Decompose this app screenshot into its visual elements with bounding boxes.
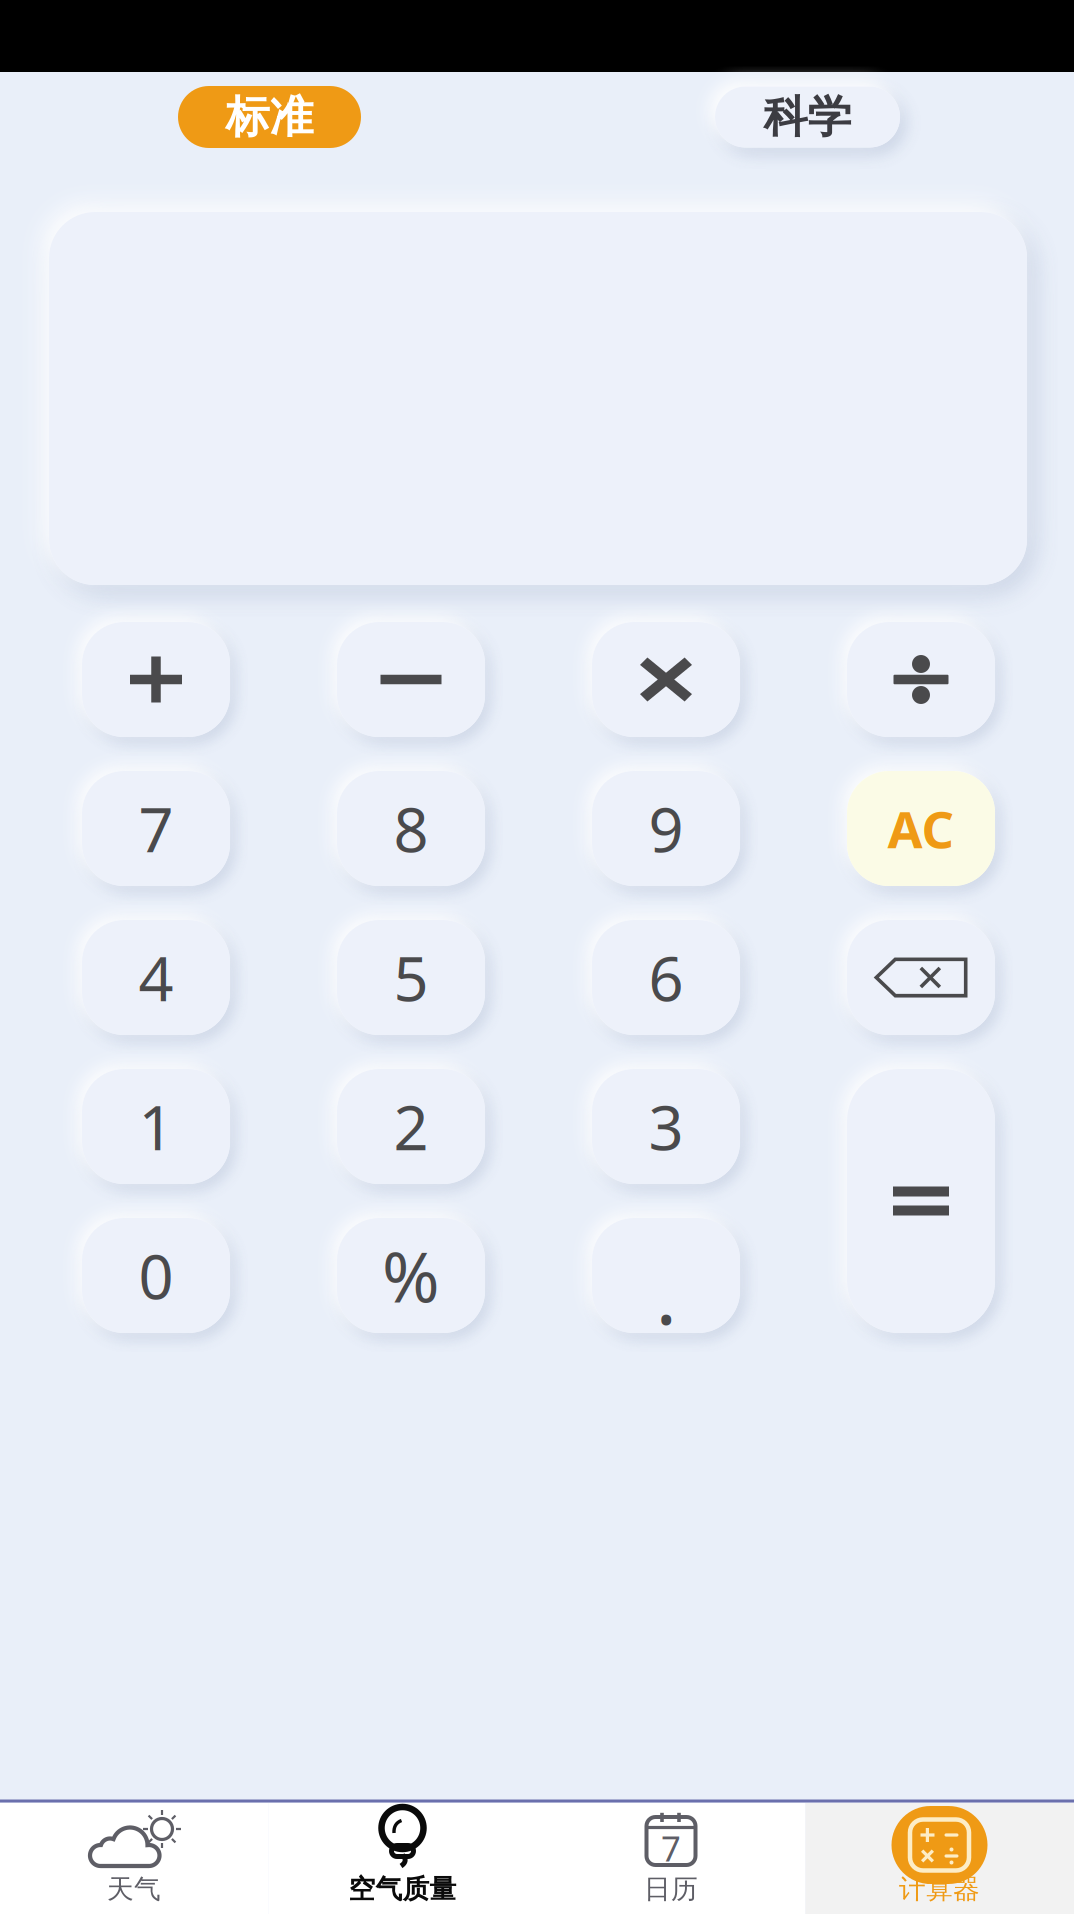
staticText: 5 [393,937,428,1018]
staticText: 6 [648,937,683,1018]
button[interactable]: 计算器 [805,1803,1074,1914]
button[interactable]: % [337,1218,485,1333]
button[interactable]: 1 [82,1069,230,1184]
button[interactable]: 9 [592,771,740,886]
button[interactable]: 4 [82,920,230,1035]
staticText: 标准 [225,90,313,144]
button[interactable]: 空气质量 [268,1803,537,1914]
button[interactable]: 2 [337,1069,485,1184]
staticText: 科学 [763,90,851,144]
button[interactable]: 3 [592,1069,740,1184]
staticText: 空气质量 [348,1873,456,1905]
button[interactable]: Divide [847,622,995,737]
button[interactable]: 7 [82,771,230,886]
staticText: 3 [648,1086,683,1167]
button[interactable]: 6 [592,920,740,1035]
staticText: 0 [138,1235,173,1316]
staticText: 9 [648,788,683,869]
button[interactable]: 5 [337,920,485,1035]
staticText: 日历 [644,1873,698,1905]
staticText: AC [887,795,954,862]
button[interactable]: Equals [847,1069,995,1333]
button[interactable]: . [592,1218,740,1333]
staticText: 计算器 [899,1873,980,1905]
button[interactable]: 0 [82,1218,230,1333]
button[interactable]: AC [847,771,995,886]
button[interactable]: 科学 [715,86,900,147]
staticText: 1 [138,1086,173,1167]
staticText: 7 [138,788,173,869]
staticText: 2 [393,1086,428,1167]
staticText: % [382,1229,440,1322]
staticText: 7 [661,1825,681,1871]
button[interactable]: Add [82,622,230,737]
button[interactable]: Multiply [592,622,740,737]
staticText: 天气 [107,1873,161,1905]
staticText: . [655,1240,676,1347]
button[interactable]: 标准 [178,86,361,148]
staticText: 8 [393,788,428,869]
button[interactable]: Subtract [337,622,485,737]
button[interactable]: 8 [337,771,485,886]
staticText: 4 [138,937,173,1018]
button[interactable]: 天气 [0,1803,268,1914]
button[interactable]: Delete [847,920,995,1035]
button[interactable]: 7 [537,1803,805,1914]
